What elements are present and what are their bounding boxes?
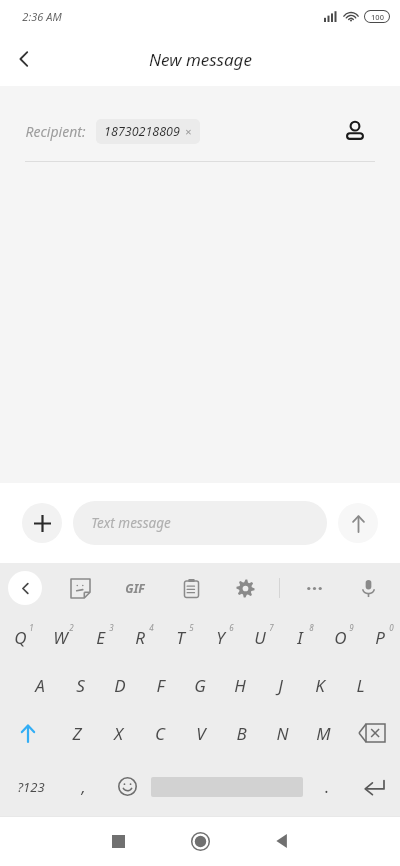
button[interactable]: Backspace (344, 709, 400, 757)
staticText: M (316, 722, 331, 745)
button[interactable]: H (220, 661, 260, 709)
button[interactable]: Send (338, 503, 378, 543)
button[interactable]: X (98, 709, 139, 757)
staticText: 5 (189, 622, 194, 633)
staticText: E (96, 626, 105, 649)
button[interactable]: E (80, 613, 120, 661)
button[interactable]: P (360, 613, 400, 661)
button[interactable]: M (303, 709, 344, 757)
staticText: . (324, 776, 329, 798)
button[interactable]: B (221, 709, 262, 757)
button[interactable]: Shift (0, 709, 56, 757)
staticText: 2:36 AM (22, 9, 62, 24)
button[interactable]: F (140, 661, 180, 709)
button[interactable]: ?123 (0, 757, 62, 816)
staticText: Q (14, 626, 27, 649)
staticText: H (234, 674, 246, 697)
button[interactable]: O (320, 613, 360, 661)
staticText: S (76, 674, 85, 697)
button[interactable]: More options (294, 568, 334, 608)
button[interactable]: T (160, 613, 200, 661)
staticText: 100 (371, 12, 384, 22)
staticText: ?123 (17, 778, 45, 796)
button[interactable]: . (304, 757, 348, 816)
button[interactable]: V (180, 709, 221, 757)
staticText: 6 (229, 622, 234, 633)
button[interactable]: 18730218809 (96, 119, 200, 144)
staticText: 1 (29, 622, 34, 633)
button[interactable]: Settings (225, 568, 265, 608)
button[interactable]: Emoji (104, 757, 150, 816)
staticText: X (114, 722, 123, 745)
button[interactable]: K (300, 661, 340, 709)
staticText: C (155, 722, 165, 745)
staticText: 9 (349, 622, 354, 633)
button[interactable]: D (100, 661, 140, 709)
staticText: D (114, 674, 126, 697)
staticText: Z (72, 722, 82, 745)
button[interactable]: Close toolbar (8, 571, 42, 605)
button[interactable]: Back (0, 35, 48, 83)
staticText: 18730218809 (104, 123, 180, 140)
staticText: 3 (109, 622, 114, 633)
button[interactable]: S (60, 661, 100, 709)
button[interactable]: A (20, 661, 60, 709)
staticText: J (278, 674, 283, 697)
button[interactable]: Home (172, 816, 228, 866)
staticText: Recipient: (25, 122, 86, 141)
staticText: N (276, 722, 289, 745)
staticText: 8 (309, 622, 314, 633)
button[interactable]: L (340, 661, 380, 709)
staticText: 0 (389, 622, 394, 633)
button[interactable]: Recents (90, 816, 146, 866)
button[interactable]: Voice input (348, 568, 388, 608)
button[interactable]: Stickers (60, 568, 100, 608)
button[interactable]: Choose contact (335, 111, 375, 151)
staticText: T (176, 626, 185, 649)
staticText: P (375, 626, 385, 649)
staticText: V (196, 722, 206, 745)
staticText: × (185, 124, 192, 139)
staticText: W (53, 626, 68, 649)
button[interactable]: U (240, 613, 280, 661)
button[interactable]: Add attachment (22, 503, 62, 543)
staticText: F (156, 674, 165, 697)
staticText: A (35, 674, 45, 697)
staticText: R (135, 626, 145, 649)
staticText: Y (216, 626, 225, 649)
staticText: U (254, 626, 266, 649)
staticText: Text message (91, 514, 171, 532)
button[interactable]: C (139, 709, 180, 757)
button[interactable]: Space (150, 757, 304, 816)
staticText: L (356, 674, 365, 697)
button[interactable]: R (120, 613, 160, 661)
staticText: I (297, 626, 303, 649)
staticText: GIF (125, 580, 145, 596)
button[interactable]: G (180, 661, 220, 709)
staticText: , (81, 776, 86, 798)
staticText: 4 (149, 622, 154, 633)
button[interactable]: Z (56, 709, 98, 757)
button[interactable]: Y (200, 613, 240, 661)
button[interactable]: I (280, 613, 320, 661)
button[interactable]: N (262, 709, 303, 757)
staticText: K (315, 674, 325, 697)
staticText: 7 (269, 622, 274, 633)
staticText: New message (149, 48, 252, 71)
button[interactable]: GIF (113, 566, 157, 610)
button[interactable]: Back (254, 816, 310, 866)
staticText: G (194, 674, 206, 697)
button[interactable]: Text message (73, 501, 327, 545)
button[interactable]: J (260, 661, 300, 709)
staticText: 2 (69, 622, 74, 633)
button[interactable]: W (40, 613, 80, 661)
staticText: B (236, 722, 247, 745)
button[interactable]: Q (0, 613, 40, 661)
staticText: O (334, 626, 347, 649)
button[interactable]: Enter (348, 757, 400, 816)
button[interactable]: , (62, 757, 104, 816)
button[interactable]: Clipboard (171, 568, 211, 608)
